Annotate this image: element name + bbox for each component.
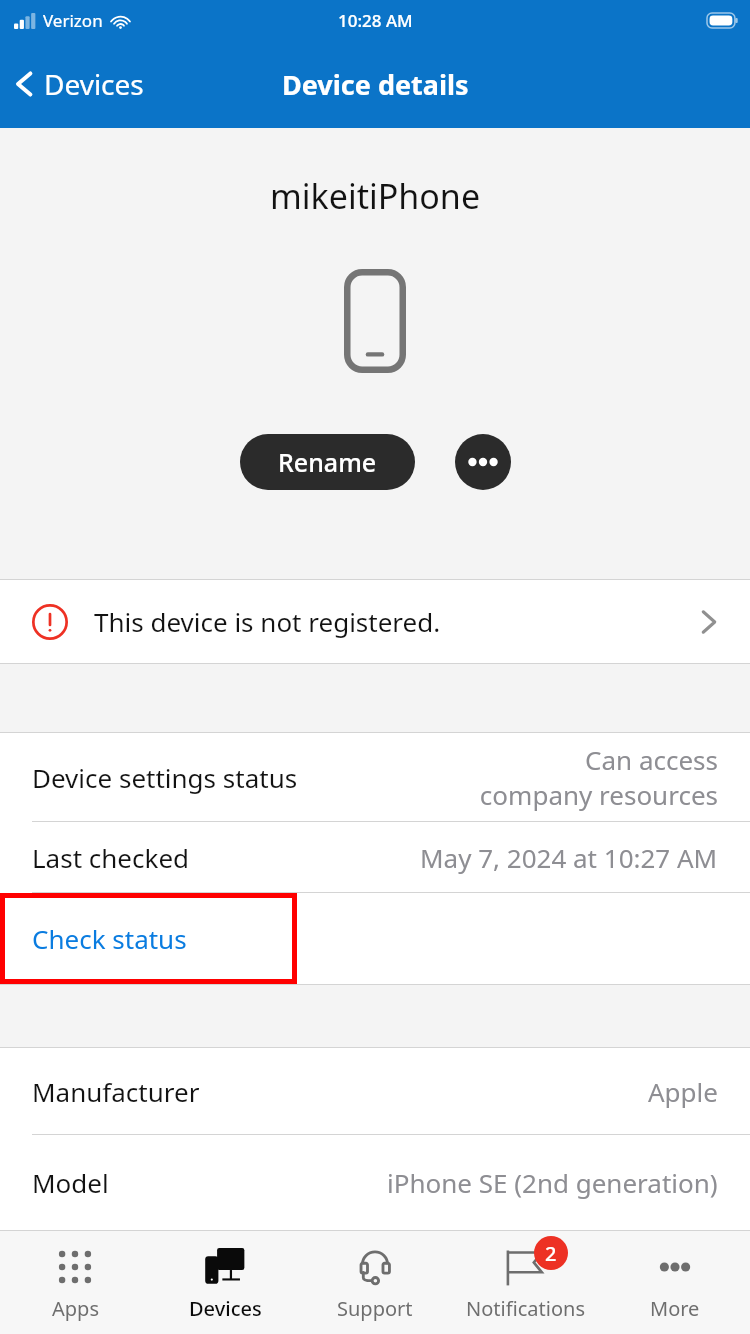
staticText: Apple xyxy=(648,1074,718,1109)
staticText: mikeitiPhone xyxy=(270,173,481,219)
staticText: More xyxy=(650,1295,700,1322)
button[interactable]: Devices xyxy=(0,59,154,109)
staticText: Device details xyxy=(282,66,469,103)
staticText: Rename xyxy=(278,445,377,479)
button[interactable]: Model xyxy=(0,1135,750,1230)
staticText: Devices xyxy=(44,65,144,103)
button[interactable]: Manufacturer xyxy=(0,1048,750,1134)
staticText: Last checked xyxy=(32,840,190,875)
staticText: iPhone SE (2nd generation) xyxy=(387,1165,718,1200)
button[interactable]: Support xyxy=(300,1231,450,1334)
staticText: Support xyxy=(337,1295,413,1322)
staticText: This device is not registered. xyxy=(94,604,441,639)
staticText: Verizon xyxy=(43,9,103,32)
button[interactable]: Devices xyxy=(150,1231,300,1334)
staticText: Apps xyxy=(52,1295,99,1322)
button[interactable]: Rename xyxy=(240,434,415,490)
button[interactable]: Apps xyxy=(0,1231,150,1334)
staticText: 2 xyxy=(545,1240,557,1267)
button[interactable]: Last checked xyxy=(0,822,750,892)
button[interactable]: Check status xyxy=(0,893,297,984)
button[interactable]: Device settings status xyxy=(0,733,750,821)
staticText: May 7, 2024 at 10:27 AM xyxy=(420,840,718,875)
staticText: Can access company resources xyxy=(479,742,718,812)
staticText: Manufacturer xyxy=(32,1074,200,1109)
staticText: Check status xyxy=(32,921,187,956)
button[interactable]: More options xyxy=(455,434,511,490)
staticText: 10:28 AM xyxy=(338,9,413,32)
staticText: Device settings status xyxy=(32,760,298,795)
button[interactable]: More xyxy=(600,1231,750,1334)
staticText: Devices xyxy=(189,1295,262,1322)
staticText: Model xyxy=(32,1165,109,1200)
staticText: Notifications xyxy=(466,1295,585,1322)
button[interactable]: This device is not registered. xyxy=(0,580,750,663)
button[interactable]: 2 xyxy=(450,1231,600,1334)
